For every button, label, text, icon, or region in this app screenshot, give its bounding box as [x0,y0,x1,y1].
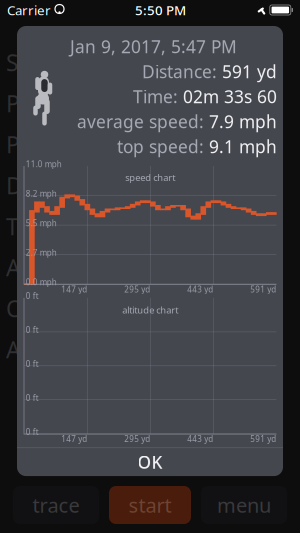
staticText: A [6,334,20,364]
staticText: 0 ft [26,358,39,369]
staticText: 9.1 mph [209,135,277,158]
button[interactable]: menu [201,486,287,524]
staticText: 591 yd [250,284,276,295]
staticText: 295 yd [124,284,150,295]
staticText: average speed: [77,110,209,133]
staticText: O [6,293,24,323]
staticText: D [6,170,23,200]
staticText: T [6,211,19,241]
staticText: 147 yd [61,284,87,295]
staticText: 443 yd [187,284,213,295]
staticText: 0 ft [26,290,39,301]
staticText: 8.2 mph [26,188,57,199]
staticText: OK [137,451,162,474]
staticText: speed chart [125,171,175,183]
staticText: 0.0 mph [26,277,57,287]
staticText: 2.7 mph [26,247,57,258]
staticText: 5.5 mph [26,218,57,228]
staticText: P [6,129,20,159]
staticText: 5:50 PM [135,1,186,19]
staticText: start [128,492,171,518]
staticText: 0 ft [26,392,39,403]
staticText: 7.9 mph [209,110,277,133]
staticText: 591 yd [222,60,277,83]
staticText: Carrier [7,1,51,19]
staticText: menu [217,492,271,518]
staticText: Time: [133,85,183,108]
button[interactable]: trace [13,486,99,524]
staticText: P [6,88,20,118]
staticText: 591 yd [250,434,276,444]
staticText: 295 yd [124,434,150,444]
staticText: 443 yd [187,434,213,444]
staticText: A [6,252,20,282]
button[interactable]: start [109,486,191,524]
staticText: 02m 33s 60 [183,85,277,108]
staticText: 0 ft [26,324,39,335]
staticText: trace [32,492,79,518]
button[interactable]: OK [17,448,283,476]
staticText: 147 yd [61,434,87,444]
staticText: altitude chart [122,304,178,316]
staticText: Distance: [142,60,222,83]
staticText: 0 ft [26,426,39,437]
staticText: top speed: [117,135,209,158]
staticText: Jan 9, 2017, 5:47 PM [70,35,237,58]
staticText: S [6,47,18,77]
staticText: 11.0 mph [26,159,62,169]
